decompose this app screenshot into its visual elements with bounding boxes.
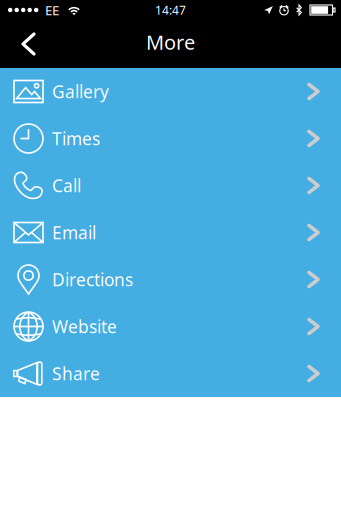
button[interactable]: Back <box>0 20 48 68</box>
button[interactable]: Times <box>0 115 341 162</box>
staticText: EE <box>45 1 59 19</box>
button[interactable]: Email <box>0 209 341 256</box>
staticText: Gallery <box>52 80 109 103</box>
staticText: Call <box>52 174 81 197</box>
button[interactable]: Directions <box>0 256 341 303</box>
staticText: More <box>146 29 195 55</box>
staticText: Times <box>52 127 100 150</box>
button[interactable]: Share <box>0 350 341 397</box>
staticText: Email <box>52 221 96 244</box>
staticText: Website <box>52 315 117 338</box>
staticText: Share <box>52 362 100 385</box>
button[interactable]: Gallery <box>0 68 341 115</box>
staticText: 14:47 <box>155 2 186 18</box>
button[interactable]: Website <box>0 303 341 350</box>
button[interactable]: Call <box>0 162 341 209</box>
staticText: Directions <box>52 268 133 291</box>
